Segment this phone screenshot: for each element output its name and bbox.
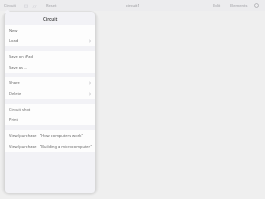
button[interactable]: Help [254,3,259,8]
button[interactable]: Undo [23,3,28,8]
button[interactable]: Step [31,3,37,9]
button[interactable]: Save as ... [5,62,95,73]
staticText: Reset [46,3,57,8]
staticText: View/purchase "Building a microcomputer" [9,144,92,149]
staticText: Edit [213,3,221,8]
button[interactable]: View/purchase "How computers work" [5,130,95,141]
staticText: Save as ... [9,65,28,70]
button[interactable]: Share [5,77,95,88]
staticText: Save on iPad [9,54,33,59]
button[interactable]: Delete [5,88,95,99]
staticText: circuit1 [126,3,140,8]
button[interactable]: Print [5,114,95,125]
staticText: New [9,28,18,33]
staticText: Delete [9,91,22,96]
button[interactable]: Circuit [3,1,17,10]
button[interactable]: Reset [45,1,58,10]
staticText: Circuit [4,3,16,8]
button[interactable]: View/purchase "Building a microcomputer" [5,141,95,152]
button[interactable]: Circuit shot [5,104,95,115]
staticText: Circuit [43,16,58,22]
staticText: Share [9,80,20,85]
button[interactable]: Edit [212,1,222,10]
button[interactable]: Elements [229,1,249,10]
staticText: Load [9,38,19,43]
button[interactable]: Save on iPad [5,51,95,62]
button[interactable]: Load [5,35,95,46]
staticText: Elements [230,3,248,8]
staticText: Print [9,117,19,122]
staticText: View/purchase "How computers work" [9,133,84,138]
staticText: Circuit shot [9,107,31,112]
button[interactable]: New [5,25,95,36]
